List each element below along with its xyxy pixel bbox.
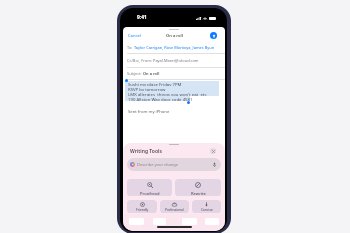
staticText: Taylor Carrigan, Rose Montoya, James Byu… xyxy=(134,45,215,50)
staticText: Cc/Bcc, From: xyxy=(127,58,153,63)
staticText: Friendly xyxy=(136,208,149,212)
button[interactable]: Describe your change xyxy=(127,158,221,171)
button[interactable]: Professional xyxy=(160,200,189,213)
staticText: RSVP by tomorrow xyxy=(128,86,166,91)
staticText: On a roll xyxy=(143,71,160,76)
button[interactable]: Concise xyxy=(192,200,221,213)
staticText: Describe your change xyxy=(137,162,178,167)
button[interactable]: Rewrite xyxy=(175,179,221,196)
staticText: Sushi my place Friday 7PM xyxy=(128,81,182,86)
staticText: To: xyxy=(127,45,134,50)
button[interactable]: Cancel xyxy=(128,33,141,39)
staticText: Rewrite xyxy=(191,191,206,196)
staticText: Payal.Maret@icloud.com xyxy=(153,58,199,63)
staticText: Proofread xyxy=(140,191,160,196)
other: Dictate xyxy=(212,162,217,167)
button[interactable]: Proofread xyxy=(127,179,172,196)
staticText: Professional xyxy=(165,208,184,212)
staticText: Writing Tools xyxy=(130,148,162,155)
button[interactable]: Friendly xyxy=(127,200,157,213)
staticText: Subject: xyxy=(127,71,143,76)
staticText: 9:41 xyxy=(137,14,147,21)
button[interactable]: Close xyxy=(210,148,216,154)
staticText: 190 Allston Way door code 4581 xyxy=(128,96,193,101)
button[interactable]: Send xyxy=(210,32,217,39)
staticText: Sent from my iPhone xyxy=(128,109,170,115)
staticText: On a roll xyxy=(166,33,183,39)
staticText: LMK allergies, things you won't eat, etc xyxy=(128,91,207,96)
staticText: Concise xyxy=(201,208,213,212)
